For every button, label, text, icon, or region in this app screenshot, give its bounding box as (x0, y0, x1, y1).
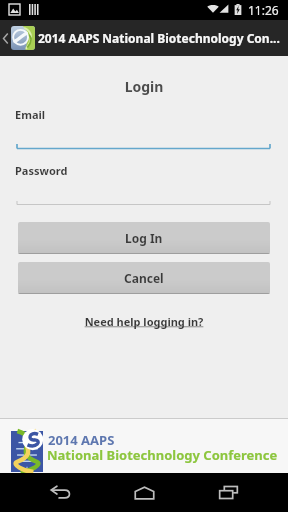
staticText: 11:26 (248, 2, 279, 18)
button[interactable]: Back (32, 473, 88, 512)
button[interactable]: Home (116, 473, 172, 512)
staticText: 2014 AAPS National Biotechnology Con... (38, 30, 280, 46)
staticText: 2014 AAPS (48, 431, 115, 449)
button[interactable]: Cancel (18, 262, 270, 294)
button[interactable]: Navigate up (0, 20, 11, 56)
staticText: Cancel (124, 270, 164, 286)
button[interactable]: Need help logging in? (0, 314, 288, 329)
staticText: Log In (125, 230, 163, 246)
staticText: National Biotechnology Conference (47, 446, 278, 464)
staticText: Email (15, 107, 46, 122)
staticText: Password (15, 163, 68, 178)
staticText: Login (0, 77, 288, 96)
button[interactable] (0, 143, 288, 153)
button[interactable]: Recent apps (200, 473, 256, 512)
button[interactable]: Log In (18, 222, 270, 254)
button[interactable] (0, 199, 288, 209)
